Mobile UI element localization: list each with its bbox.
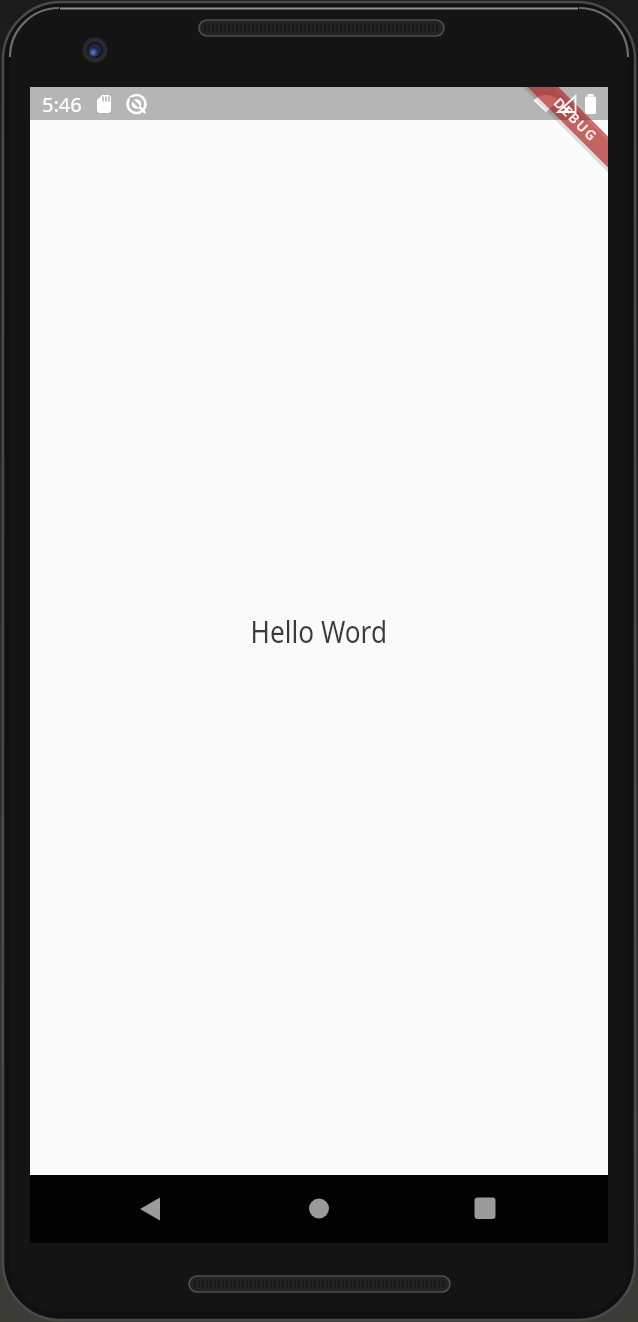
button[interactable] [301,1191,337,1227]
button[interactable] [467,1191,503,1227]
staticText: Hello Word [251,610,387,652]
button[interactable] [132,1191,168,1227]
staticText: DEBUG [550,94,602,146]
staticText: 5:46 [42,91,82,118]
